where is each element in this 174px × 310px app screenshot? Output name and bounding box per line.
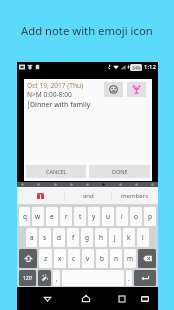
button[interactable]: v xyxy=(82,249,94,268)
staticText: N>M 0:00-8:00 xyxy=(27,90,72,98)
button[interactable]: Home xyxy=(77,290,94,307)
button[interactable]: l xyxy=(137,228,149,247)
staticText: c xyxy=(72,254,76,263)
button[interactable]: Cocktail icon xyxy=(127,82,146,97)
staticText: m xyxy=(127,254,134,263)
staticText: 1:12 xyxy=(144,63,156,71)
staticText: d xyxy=(57,233,61,242)
button[interactable]: q xyxy=(19,207,30,226)
staticText: l xyxy=(142,233,144,242)
button[interactable]: a xyxy=(26,228,37,247)
staticText: b xyxy=(100,254,104,263)
button[interactable]: s xyxy=(39,228,51,247)
button[interactable]: and xyxy=(65,187,111,204)
button[interactable]: Back xyxy=(39,290,56,307)
staticText: members xyxy=(121,192,149,200)
button[interactable]: o xyxy=(130,207,142,226)
staticText: r xyxy=(65,212,68,221)
staticText: DONE xyxy=(112,168,128,175)
staticText: j xyxy=(114,233,116,242)
staticText: z xyxy=(44,254,48,263)
staticText: e xyxy=(50,212,54,221)
button[interactable]: t xyxy=(74,207,86,226)
staticText: . xyxy=(128,274,130,283)
button[interactable]: Choose emoji xyxy=(104,82,123,97)
staticText: 34% xyxy=(132,65,141,71)
button[interactable]: CANCEL xyxy=(26,165,86,178)
button[interactable]: z xyxy=(39,249,52,268)
staticText: h xyxy=(99,233,104,242)
button[interactable]: m xyxy=(124,249,136,268)
button[interactable]: del xyxy=(138,249,156,268)
staticText: n xyxy=(114,254,119,263)
button[interactable]: . xyxy=(126,270,132,286)
button[interactable]: c xyxy=(68,249,80,268)
button[interactable]: DONE xyxy=(89,165,150,178)
button[interactable]: j xyxy=(109,228,121,247)
staticText: t xyxy=(79,212,82,221)
button[interactable]: mic xyxy=(38,270,51,286)
button[interactable]: shift xyxy=(19,249,37,268)
staticText: s xyxy=(43,233,47,242)
staticText: w xyxy=(35,212,41,221)
staticText: Dinner with family xyxy=(30,100,91,110)
staticText: u xyxy=(106,212,111,221)
button[interactable]: h xyxy=(95,228,107,247)
button[interactable]: Gift emoji xyxy=(17,187,64,204)
button[interactable]: k xyxy=(123,228,135,247)
button[interactable]: n xyxy=(110,249,122,268)
staticText: o xyxy=(134,212,138,221)
button[interactable]: e xyxy=(46,207,58,226)
button[interactable]: enter xyxy=(134,270,156,286)
staticText: g xyxy=(85,233,89,242)
button[interactable]: f xyxy=(67,228,79,247)
staticText: q xyxy=(23,212,27,221)
staticText: f xyxy=(72,233,75,242)
button[interactable]: Switch keyboard xyxy=(136,290,153,307)
button[interactable]: g xyxy=(81,228,93,247)
staticText: 12!? xyxy=(23,275,33,282)
button[interactable]: p xyxy=(144,207,156,226)
button[interactable]: , xyxy=(53,270,60,286)
button[interactable]: y xyxy=(88,207,100,226)
staticText: y xyxy=(92,212,96,221)
staticText: and xyxy=(83,192,94,200)
button[interactable]: r xyxy=(60,207,72,226)
staticText: p xyxy=(148,212,152,221)
staticText: v xyxy=(86,254,90,263)
button[interactable]: b xyxy=(96,249,108,268)
button[interactable]: u xyxy=(102,207,114,226)
button[interactable]: i xyxy=(116,207,128,226)
button[interactable]: Recents xyxy=(113,290,130,307)
button[interactable]: members xyxy=(112,187,158,204)
staticText: k xyxy=(127,233,131,242)
staticText: a xyxy=(30,233,34,242)
button[interactable]: d xyxy=(53,228,65,247)
button[interactable]: x xyxy=(54,249,66,268)
staticText: x xyxy=(58,254,62,263)
staticText: CANCEL xyxy=(46,168,67,175)
staticText: , xyxy=(56,274,58,283)
staticText: i xyxy=(121,212,123,221)
button[interactable]: w xyxy=(32,207,44,226)
staticText: Oct 19, 2017 (Thu) xyxy=(27,81,84,90)
staticText: Add note with emoji icon xyxy=(21,23,153,38)
button[interactable]: 12!? xyxy=(19,270,36,286)
